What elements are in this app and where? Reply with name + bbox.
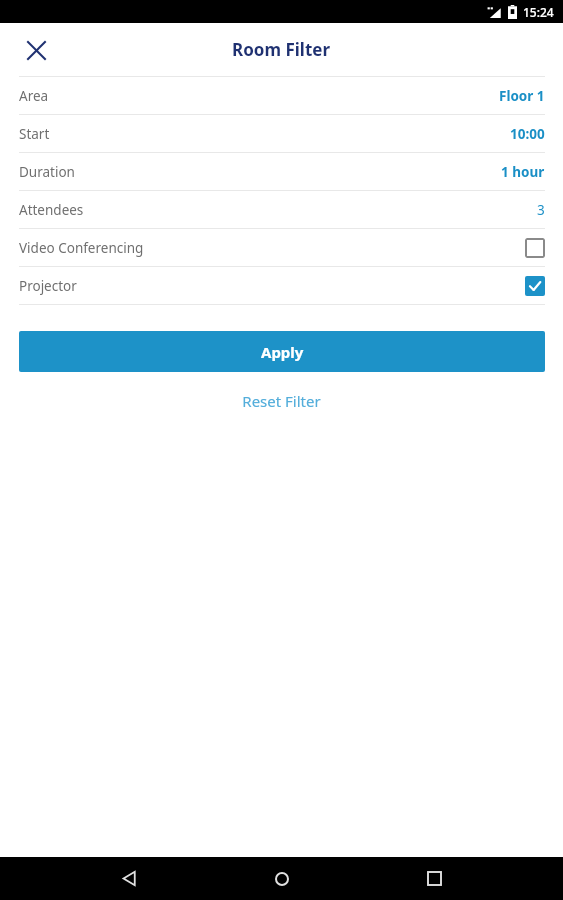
button[interactable]: Video Conferencing [0, 229, 563, 266]
button[interactable]: Home [258, 857, 306, 900]
button[interactable]: Duration [0, 153, 563, 190]
staticText: 3 [537, 201, 545, 219]
button[interactable]: Start [0, 115, 563, 152]
staticText: Reset Filter [242, 391, 321, 411]
staticText: Room Filter [232, 38, 331, 61]
staticText: Apply [261, 342, 304, 362]
staticText: 1 hour [501, 163, 545, 181]
staticText: Attendees [19, 201, 84, 219]
staticText: Video Conferencing [19, 239, 144, 257]
button[interactable]: Projector [0, 267, 563, 304]
button[interactable]: Close [16, 30, 56, 70]
button[interactable]: Area [0, 77, 563, 114]
button[interactable]: Attendees [0, 191, 563, 228]
button[interactable]: Recent apps [410, 857, 458, 900]
button[interactable]: Reset Filter [226, 386, 337, 416]
staticText: 10:00 [510, 125, 545, 143]
staticText: Area [19, 87, 49, 105]
staticText: Start [19, 125, 50, 143]
staticText: Projector [19, 277, 77, 295]
button[interactable]: Back [105, 857, 153, 900]
button[interactable]: Apply [19, 331, 545, 372]
staticText: 15:24 [523, 4, 554, 20]
staticText: Floor 1 [499, 87, 545, 105]
staticText: Duration [19, 163, 75, 181]
